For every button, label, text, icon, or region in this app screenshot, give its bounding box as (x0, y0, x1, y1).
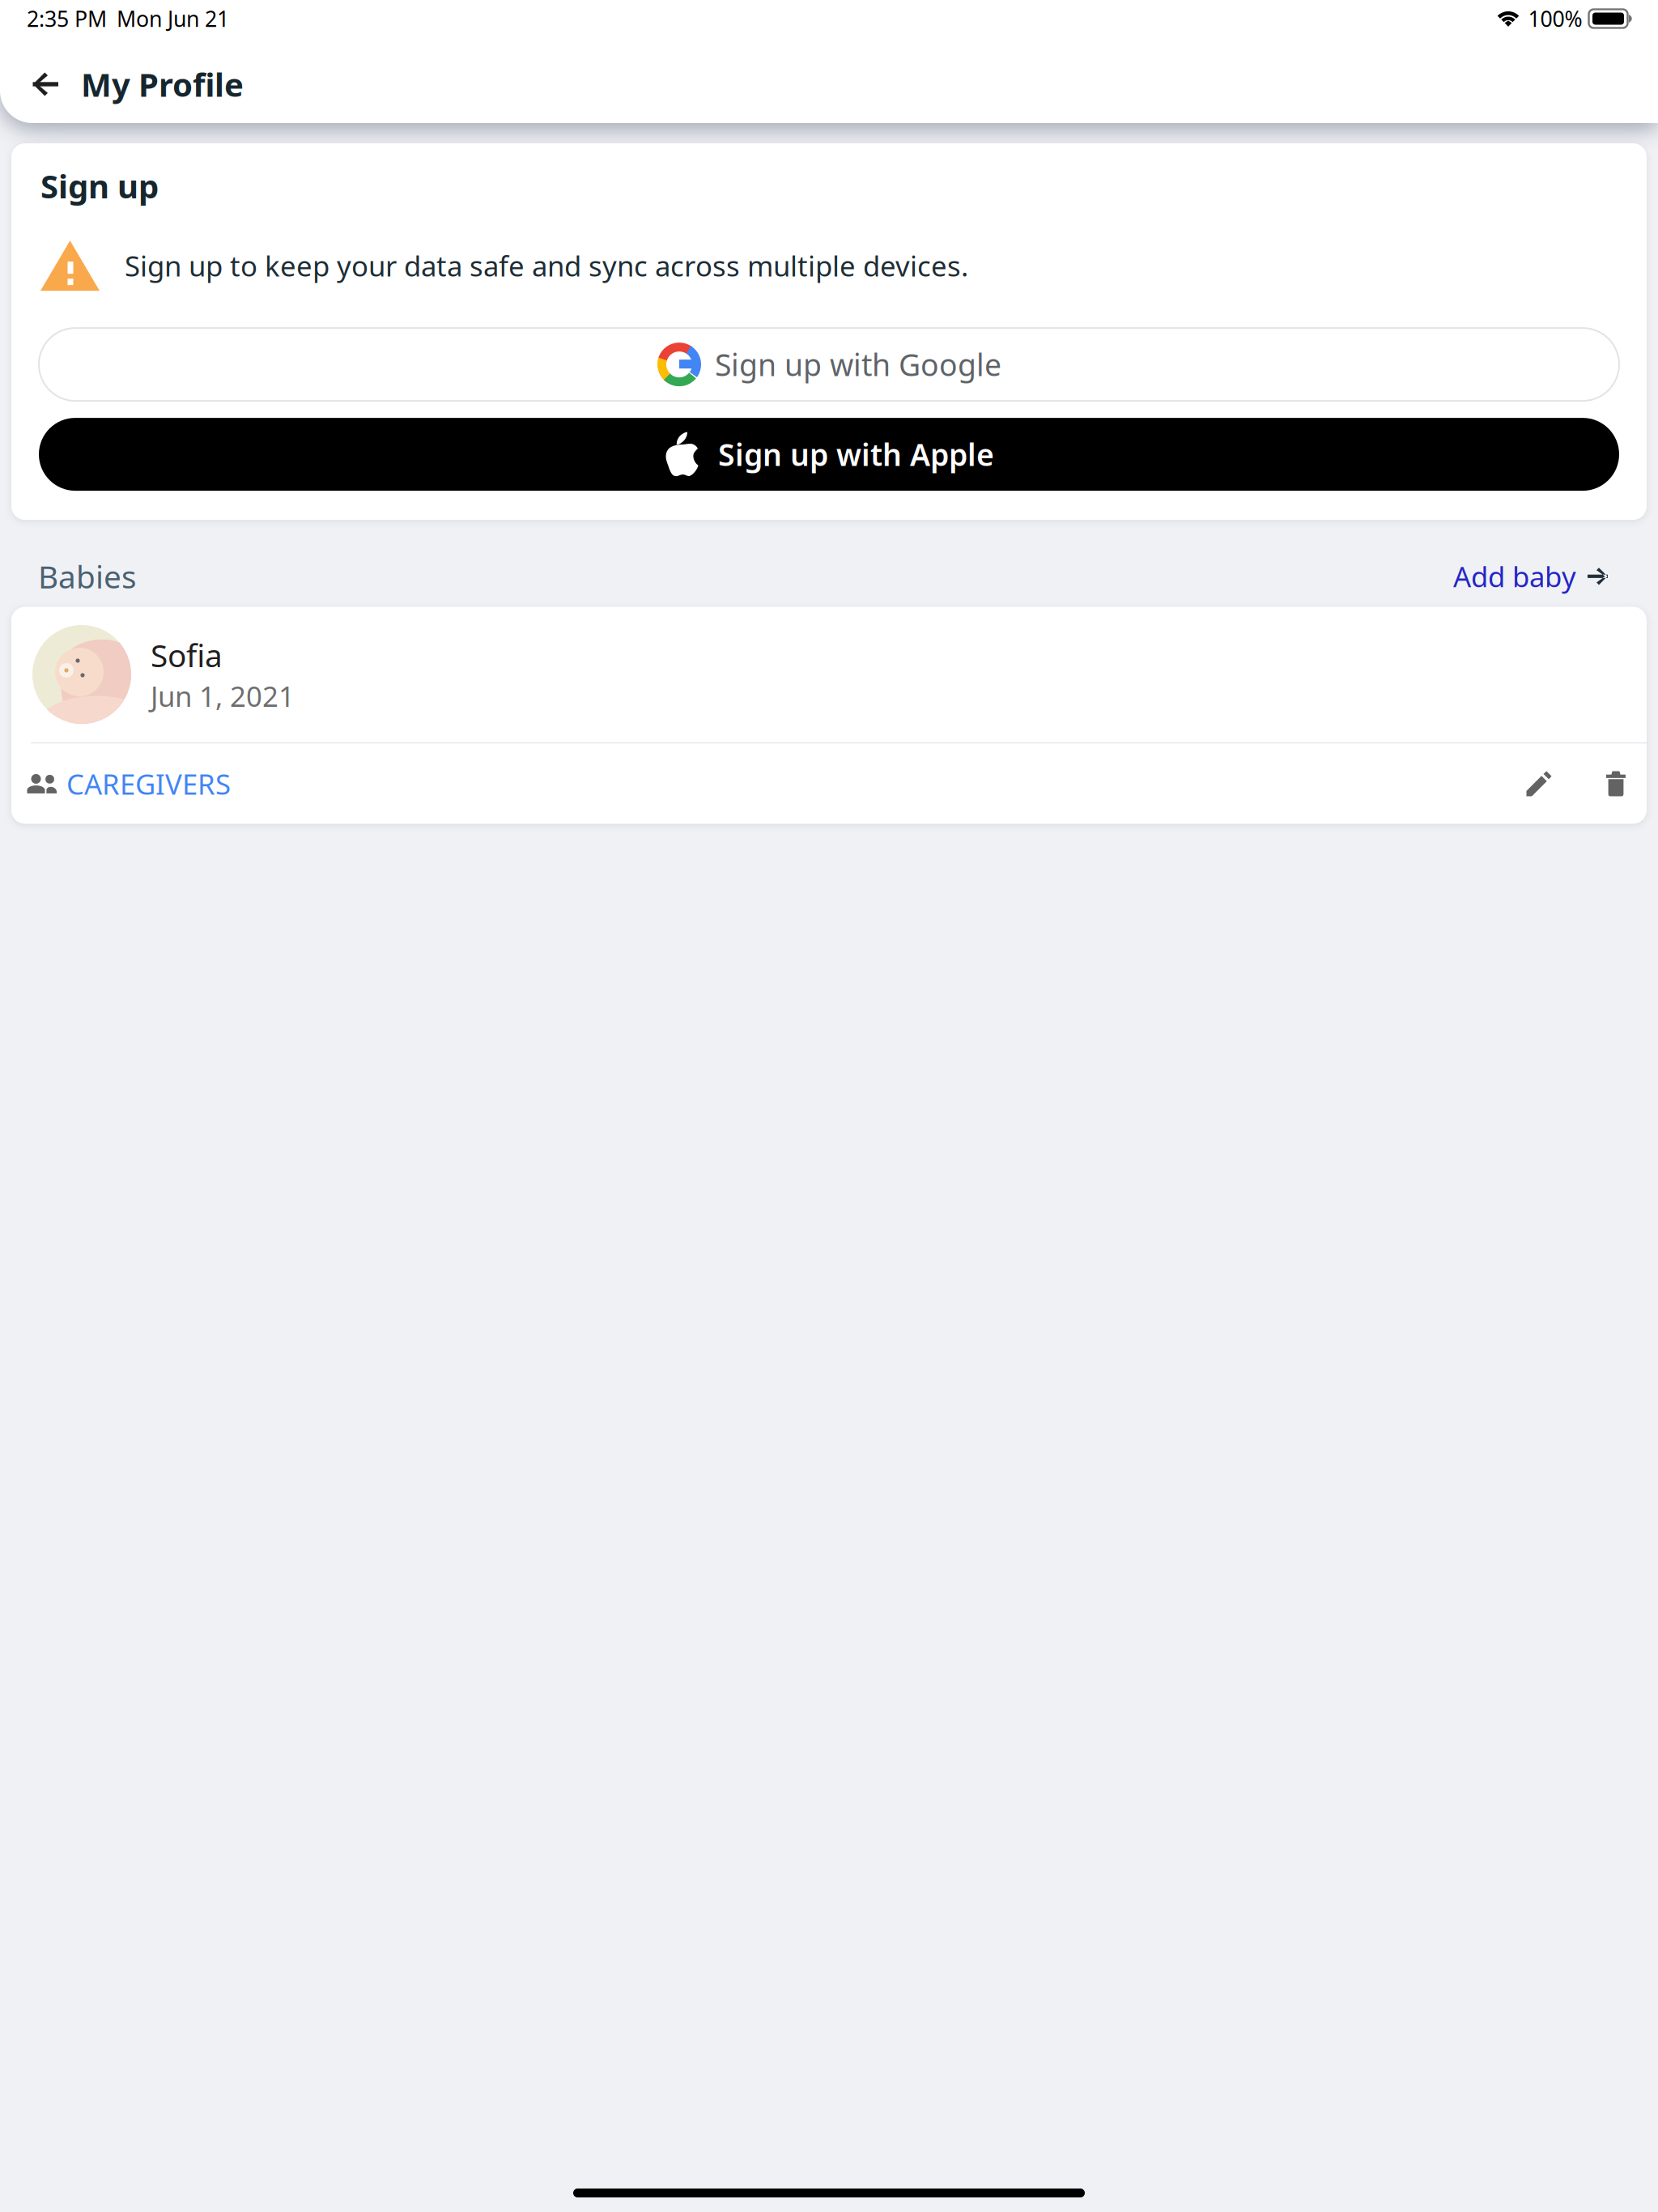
staticText: Mon Jun 21 (117, 4, 229, 33)
button[interactable]: Sign up with Google (39, 328, 1619, 401)
staticText: Sign up to keep your data safe and sync … (125, 247, 968, 284)
staticText: Sign up with Apple (718, 434, 994, 474)
button[interactable]: Add baby (1453, 558, 1608, 595)
staticText: CAREGIVERS (66, 765, 231, 802)
button[interactable]: Sofia (11, 607, 1647, 742)
staticText: Jun 1, 2021 (151, 677, 295, 715)
staticText: Sofia (151, 634, 223, 676)
staticText: 2:35 PM (27, 4, 107, 33)
button[interactable]: Delete (1585, 744, 1647, 824)
staticText: Add baby (1453, 558, 1576, 595)
button[interactable]: CAREGIVERS (11, 744, 250, 824)
button[interactable]: Edit (1493, 744, 1585, 824)
staticText: Sign up (40, 164, 159, 207)
staticText: Babies (38, 556, 137, 597)
staticText: 100% (1528, 4, 1582, 33)
button[interactable]: Sign up with Apple (39, 418, 1619, 491)
button[interactable]: Back (0, 45, 81, 123)
staticText: My Profile (81, 63, 244, 106)
staticText: Sign up with Google (715, 344, 1001, 385)
